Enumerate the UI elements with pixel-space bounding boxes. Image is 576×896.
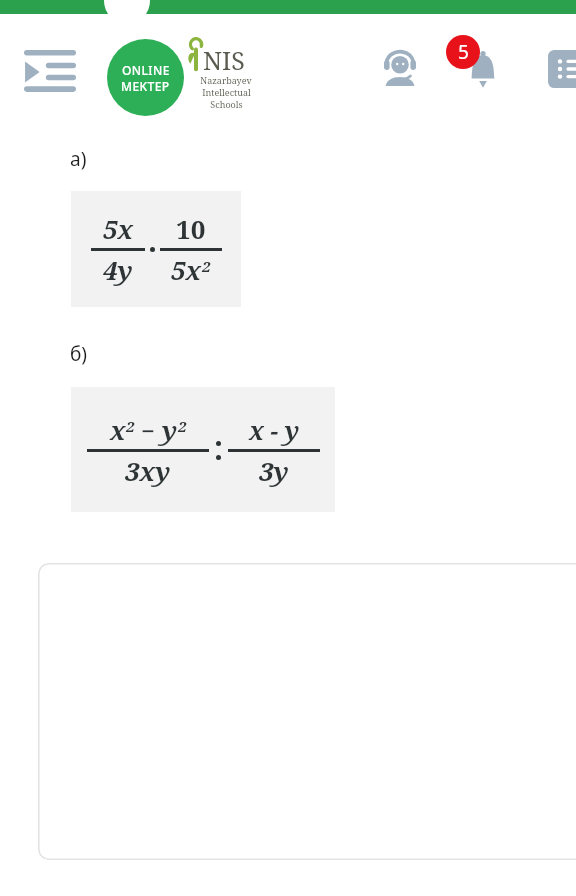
button[interactable]: Notifications, 5 new	[452, 42, 508, 94]
staticText: MEKTEP	[121, 78, 170, 94]
staticText: Nazarbayev	[200, 74, 252, 86]
staticText: 2	[178, 416, 187, 436]
button[interactable]: Menu	[18, 42, 82, 100]
staticText: 3y	[259, 453, 289, 488]
staticText: 4y	[103, 252, 133, 287]
staticText: x − y	[249, 413, 300, 447]
staticText: 5x	[171, 252, 202, 287]
staticText: 2	[202, 256, 211, 276]
staticText: 2	[126, 416, 135, 436]
staticText: Schools	[210, 98, 243, 110]
staticText: ONLINE	[122, 62, 170, 78]
staticText: 10	[176, 211, 206, 246]
staticText: 5x	[103, 211, 134, 246]
staticText: −	[135, 414, 162, 447]
staticText: x	[110, 412, 126, 447]
staticText: NIS	[203, 43, 245, 77]
button[interactable]: Tasks	[548, 48, 576, 90]
staticText: y	[162, 412, 178, 447]
staticText: 5	[458, 39, 469, 65]
staticText: 3xy	[125, 453, 171, 488]
staticText: б)	[70, 341, 88, 367]
button[interactable]: Support	[378, 44, 422, 88]
button[interactable]: Online Mektep	[107, 39, 184, 116]
staticText: a)	[70, 146, 87, 172]
staticText: Intellectual	[202, 86, 251, 98]
button[interactable]: Nazarbayev Intellectual Schools	[186, 36, 258, 114]
